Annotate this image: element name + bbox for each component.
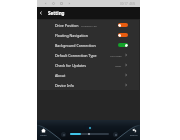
staticText: Default Connection Type xyxy=(55,53,97,58)
other: Back xyxy=(38,10,44,16)
button[interactable]: Drive Position xyxy=(38,20,139,30)
staticText: Device Info xyxy=(55,83,74,88)
button[interactable]: Floating Navigation xyxy=(38,30,139,40)
button[interactable]: Background Connection xyxy=(38,40,139,50)
staticText: Floating Navigation xyxy=(55,33,88,38)
staticText: Return xyxy=(130,134,138,137)
staticText: Home xyxy=(40,134,47,137)
button[interactable]: Default Connection Type xyxy=(38,50,139,60)
button[interactable]: Brightness xyxy=(83,124,96,131)
button[interactable]: Device Info xyxy=(38,80,139,90)
staticText: Check for Updates xyxy=(55,63,87,68)
staticText: Whatever Left xyxy=(81,24,97,27)
button[interactable]: About xyxy=(38,70,139,80)
button[interactable]: Toggle Drive Position xyxy=(118,23,128,27)
staticText: Setting xyxy=(48,10,65,16)
staticText: Last Mode xyxy=(110,54,122,57)
staticText: About xyxy=(55,73,66,78)
button[interactable]: Back xyxy=(37,7,140,19)
button[interactable]: Toggle Floating Navigation xyxy=(118,33,128,37)
staticText: never xyxy=(115,64,122,67)
button[interactable]: Check for Updates xyxy=(38,60,139,70)
button[interactable]: Increase brightness xyxy=(113,132,118,137)
button[interactable]: Decrease brightness xyxy=(61,132,66,137)
button[interactable]: Home xyxy=(37,127,49,139)
button[interactable]: Toggle Background Connection xyxy=(118,43,128,47)
staticText: Background Connection xyxy=(55,43,96,48)
staticText: 00:17 46% xyxy=(120,2,136,6)
staticText: Drive Position xyxy=(55,23,79,28)
button[interactable]: Return xyxy=(128,127,140,139)
